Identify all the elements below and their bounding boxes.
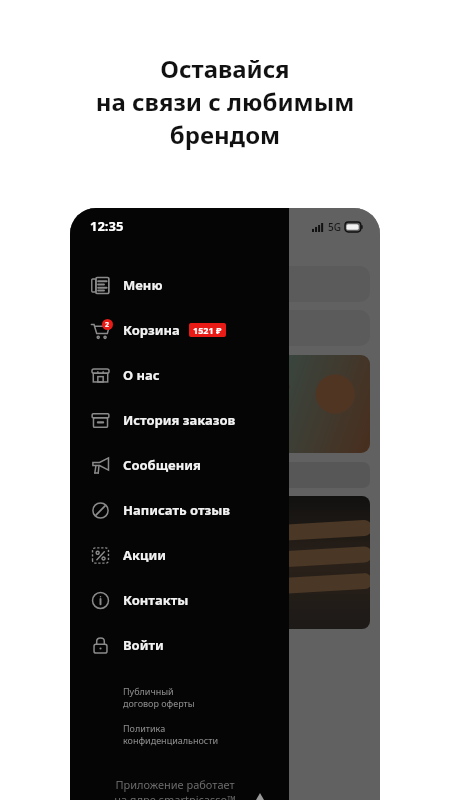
button[interactable]: История заказов [70, 401, 289, 438]
staticText: О нас [123, 366, 160, 384]
staticText: Сообщения [123, 456, 201, 474]
staticText: Политика конфиденциальности [123, 722, 219, 747]
staticText: Написать отзыв [123, 501, 231, 519]
staticText: Приложение работает на ядре smartpicasso… [95, 777, 255, 800]
staticText: ТОП [93, 505, 112, 517]
staticText: Акции [123, 546, 166, 564]
button[interactable]: Сообщения [70, 446, 289, 483]
button[interactable]: Политика конфиденциальности [123, 722, 219, 747]
staticText: История заказов [123, 411, 236, 429]
staticText: Безусловная классика мангальной кулинари… [80, 684, 249, 726]
staticText: Войти [123, 636, 164, 654]
staticText: Публичный договор оферты [123, 685, 195, 710]
staticText: Combo [209, 414, 269, 437]
button[interactable]: Войти [70, 626, 289, 663]
staticText: Меню [123, 276, 163, 294]
staticText: Корзина [123, 321, 180, 339]
button[interactable]: О нас [70, 356, 289, 393]
button[interactable]: Контакты [70, 581, 289, 618]
staticText: Рязань [212, 320, 253, 336]
staticText: 2 [105, 320, 110, 330]
button[interactable]: Публичный договор оферты [123, 685, 195, 710]
button[interactable]: Написать отзыв [70, 491, 289, 528]
button[interactable]: Акции [70, 536, 289, 573]
staticText: 1521 ₽ [193, 324, 222, 336]
staticText: Оставайся на связи с любимым брендом [26, 52, 424, 151]
staticText: 5G [328, 220, 341, 234]
staticText: ШАШЛЫК из свиной шеи [80, 634, 219, 667]
staticText: 12:35 [90, 217, 124, 235]
button[interactable]: 2 [70, 311, 289, 348]
button[interactable]: Меню [70, 266, 289, 303]
staticText: Контакты [123, 591, 189, 609]
staticText: БЛЮДА НА МАНГАЛЕ [90, 468, 208, 483]
